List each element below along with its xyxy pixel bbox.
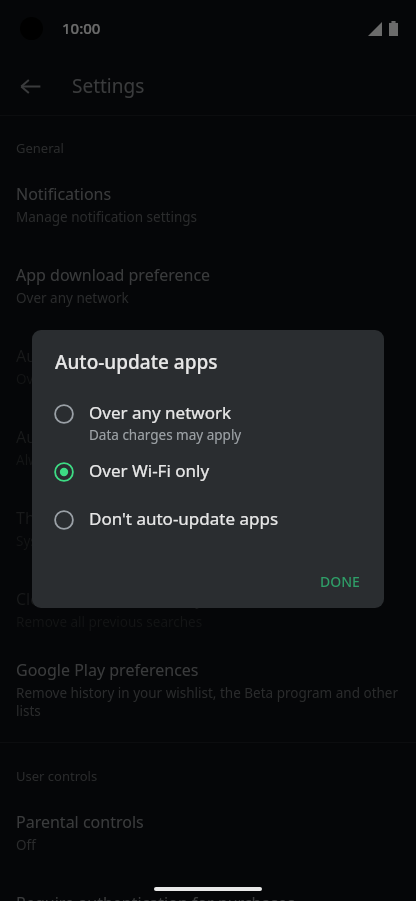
button[interactable]: Auto-play videos — [0, 426, 416, 469]
staticText: Manage notification settings — [16, 208, 400, 226]
button[interactable]: Google Play preferences — [0, 659, 416, 720]
button[interactable]: Clear local search history — [0, 588, 416, 631]
staticText: Auto-update apps — [16, 345, 151, 367]
button[interactable]: Auto-update apps — [0, 345, 416, 388]
staticText: Clear local search history — [16, 588, 204, 610]
button[interactable]: Notifications — [0, 183, 416, 226]
button[interactable]: Over Wi-Fi only — [32, 456, 384, 487]
staticText: Data charges may apply — [89, 426, 242, 444]
staticText: Parental controls — [16, 811, 144, 833]
staticText: Google Play preferences — [16, 659, 199, 681]
button[interactable]: Over any network — [32, 398, 384, 447]
staticText: General — [16, 139, 64, 157]
button[interactable]: Theme — [0, 507, 416, 550]
staticText: System default — [16, 532, 400, 550]
staticText: Always — [16, 451, 400, 469]
staticText: DONE — [320, 572, 360, 591]
staticText: 10:00 — [62, 18, 101, 38]
button[interactable]: Require authentication for purchases — [0, 892, 416, 901]
staticText: Remove history in your wishlist, the Bet… — [16, 684, 400, 720]
staticText: User controls — [16, 767, 98, 785]
staticText: Theme — [16, 507, 68, 529]
button[interactable]: Parental controls — [0, 811, 416, 854]
staticText: Notifications — [16, 183, 112, 205]
staticText: Over any network — [89, 401, 232, 424]
staticText: Settings — [72, 73, 145, 99]
staticText: Auto-update apps — [55, 349, 218, 375]
staticText: Over Wi-Fi only — [89, 459, 210, 482]
button[interactable]: Don't auto-update apps — [32, 504, 384, 535]
staticText: Off — [16, 836, 400, 854]
staticText: Over Wi-Fi only — [16, 370, 400, 388]
button[interactable]: DONE — [308, 563, 372, 600]
staticText: App download preference — [16, 264, 211, 286]
button[interactable]: App download preference — [0, 264, 416, 307]
button[interactable]: Back — [8, 64, 52, 108]
staticText: Auto-play videos — [16, 426, 141, 448]
staticText: Don't auto-update apps — [89, 507, 279, 530]
staticText: Require authentication for purchases — [16, 892, 295, 901]
staticText: Over any network — [16, 289, 400, 307]
